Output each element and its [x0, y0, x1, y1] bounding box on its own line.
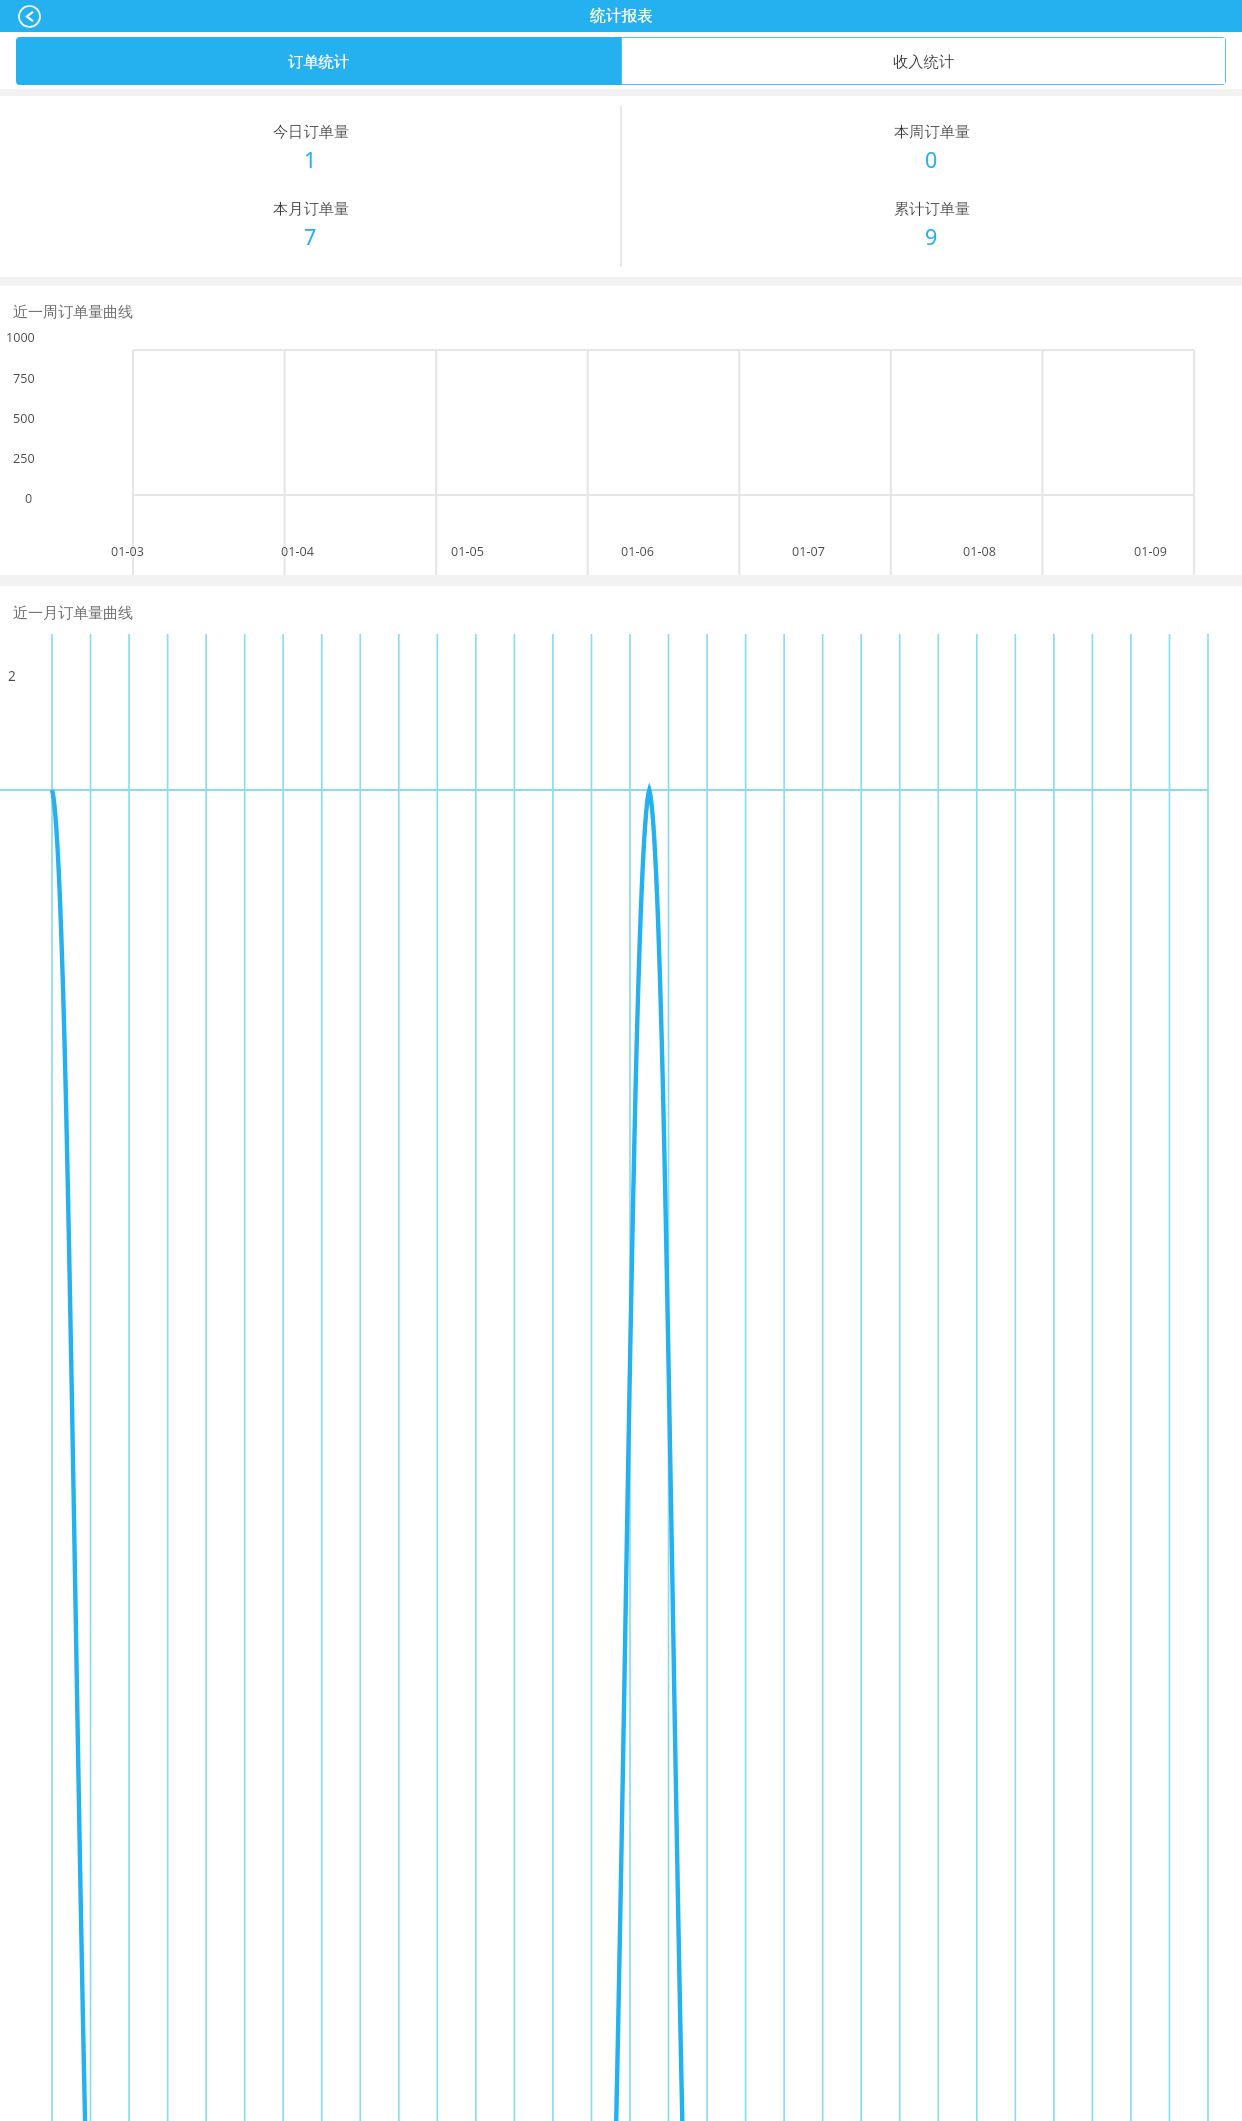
staticText: 1: [304, 145, 317, 174]
staticText: 近一周订单量曲线: [13, 303, 133, 322]
staticText: 7: [304, 222, 317, 251]
staticText: 500: [13, 410, 35, 427]
staticText: 01-08: [963, 543, 996, 560]
staticText: 01-09: [1134, 543, 1167, 560]
staticText: 近一月订单量曲线: [13, 604, 133, 623]
staticText: 9: [925, 222, 938, 251]
staticText: 本周订单量: [894, 122, 970, 141]
staticText: 0: [925, 145, 938, 174]
staticText: 01-07: [792, 543, 825, 560]
staticText: 今日订单量: [273, 122, 349, 141]
button[interactable]: 本周订单量: [621, 122, 1242, 174]
staticText: 250: [13, 450, 35, 467]
staticText: 统计报表: [590, 6, 653, 26]
button[interactable]: 本月订单量: [0, 199, 621, 251]
staticText: 2: [8, 667, 16, 685]
staticText: 01-04: [281, 543, 314, 560]
staticText: 01-05: [451, 543, 484, 560]
button[interactable]: 今日订单量: [0, 122, 621, 174]
staticText: 收入统计: [893, 52, 955, 71]
button[interactable]: Back: [18, 5, 41, 28]
button[interactable]: 收入统计: [621, 37, 1226, 85]
staticText: 750: [13, 370, 35, 387]
staticText: 本月订单量: [273, 199, 349, 218]
staticText: 订单统计: [288, 52, 350, 71]
staticText: 01-06: [621, 543, 654, 560]
button[interactable]: 订单统计: [16, 37, 621, 85]
staticText: 01-03: [111, 543, 144, 560]
staticText: 累计订单量: [894, 199, 970, 218]
button[interactable]: 累计订单量: [621, 199, 1242, 251]
staticText: 1000: [6, 329, 35, 346]
staticText: 0: [25, 490, 33, 507]
